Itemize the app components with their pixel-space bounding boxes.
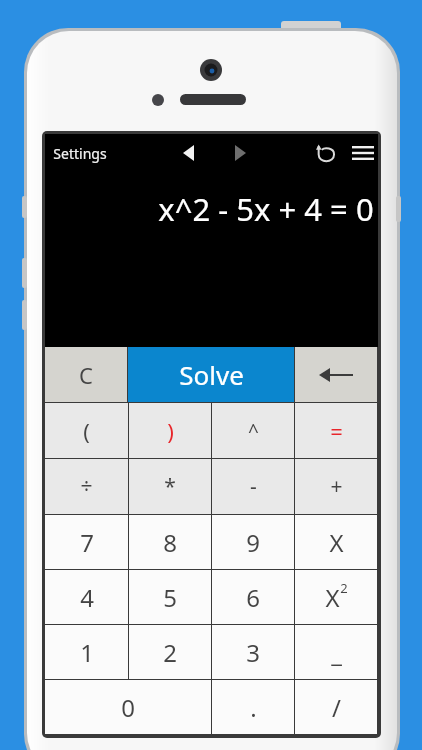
staticText: = — [330, 416, 343, 446]
button[interactable]: 3 — [212, 625, 294, 679]
button[interactable]: . — [212, 680, 294, 734]
button[interactable]: Menu — [345, 135, 381, 171]
staticText: * — [164, 472, 176, 501]
staticText: 4 — [80, 581, 94, 614]
staticText: C — [79, 360, 93, 390]
button[interactable]: Undo — [307, 135, 343, 171]
button[interactable]: 9 — [212, 515, 294, 569]
staticText: 3 — [246, 636, 260, 669]
button[interactable]: C — [45, 347, 127, 402]
button[interactable]: Previous — [171, 136, 205, 170]
button[interactable]: ( — [45, 403, 128, 458]
staticText: 8 — [163, 526, 177, 559]
staticText: . — [250, 691, 257, 724]
staticText: - — [250, 472, 257, 501]
button[interactable]: ÷ — [45, 459, 128, 514]
button[interactable]: X squared — [295, 570, 377, 624]
button[interactable]: ^ — [212, 403, 294, 458]
staticText: Solve — [179, 357, 244, 392]
staticText: 6 — [246, 581, 260, 614]
button[interactable]: X — [295, 515, 377, 569]
button[interactable]: Backspace — [295, 347, 377, 402]
button[interactable]: 6 — [212, 570, 294, 624]
button[interactable]: - — [212, 459, 294, 514]
staticText: Settings — [53, 144, 107, 163]
staticText: 7 — [80, 526, 94, 559]
button[interactable]: 2 — [129, 625, 211, 679]
button[interactable]: Settings — [45, 139, 115, 168]
button[interactable]: Solve — [128, 347, 294, 402]
staticText: 5 — [163, 581, 177, 614]
button[interactable]: ) — [129, 403, 211, 458]
staticText: 1 — [80, 636, 94, 669]
button[interactable]: 1 — [45, 625, 128, 679]
staticText: / — [332, 691, 341, 724]
button[interactable]: _ — [295, 625, 377, 679]
button[interactable]: 8 — [129, 515, 211, 569]
staticText: x^2 - 5x + 4 = 0 — [158, 188, 374, 230]
staticText: 0 — [121, 691, 135, 724]
staticText: 2 — [163, 636, 177, 669]
staticText: + — [330, 472, 343, 501]
staticText: X — [329, 526, 344, 559]
button[interactable]: 0 — [45, 680, 211, 734]
staticText: ÷ — [80, 472, 93, 501]
staticText: _ — [331, 636, 342, 669]
staticText: ^ — [248, 418, 259, 444]
button[interactable]: = — [295, 403, 377, 458]
staticText: 9 — [246, 526, 260, 559]
button[interactable]: 4 — [45, 570, 128, 624]
staticText: ( — [83, 416, 90, 446]
staticText: 2 — [340, 579, 348, 597]
staticText: ) — [167, 416, 174, 446]
button[interactable]: + — [295, 459, 377, 514]
button[interactable]: * — [129, 459, 211, 514]
button[interactable]: Next — [223, 136, 257, 170]
button[interactable]: / — [295, 680, 377, 734]
staticText: X — [325, 581, 340, 614]
button[interactable]: 7 — [45, 515, 128, 569]
button[interactable]: 5 — [129, 570, 211, 624]
